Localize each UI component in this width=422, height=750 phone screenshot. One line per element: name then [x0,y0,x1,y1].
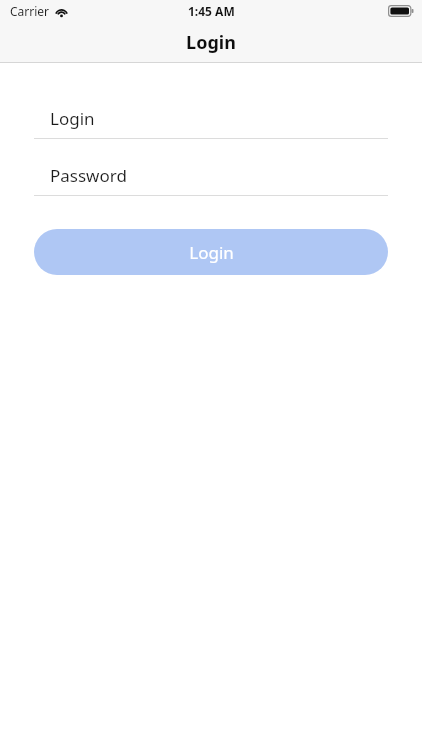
staticText: Password [50,164,127,187]
button[interactable]: Password [34,156,388,196]
staticText: Login [189,241,234,264]
staticText: Login [50,107,95,130]
button[interactable]: Login [34,99,388,139]
other: Wi-Fi [55,5,68,18]
staticText: 1:45 AM [188,3,235,19]
staticText: Login [186,30,236,55]
other: Battery full [388,5,414,17]
staticText: Carrier [10,3,50,19]
button[interactable]: Login [34,229,388,275]
